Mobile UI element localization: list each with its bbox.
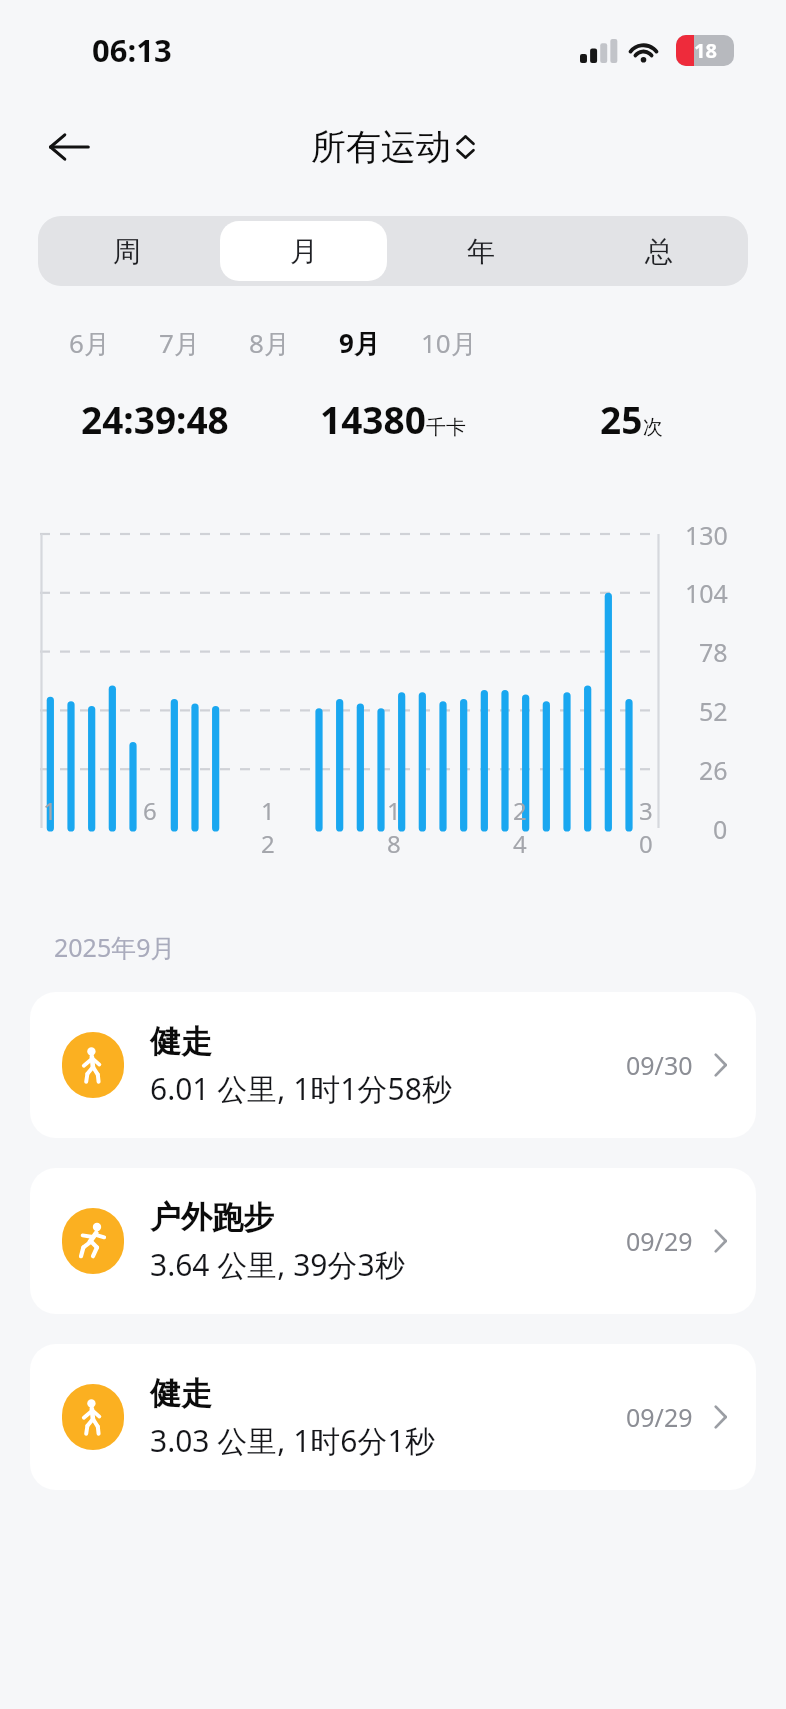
staticText: 1 <box>43 794 57 827</box>
staticText: 24:39:48 <box>81 394 229 444</box>
button[interactable]: 户外跑步 <box>30 1168 756 1314</box>
staticText: 2025年9月 <box>54 930 176 964</box>
staticText: 25 <box>600 394 643 444</box>
staticText: 0 <box>713 812 728 846</box>
staticText: 24 <box>513 794 534 860</box>
button[interactable]: 9月 <box>314 318 404 368</box>
button[interactable]: 健走 <box>30 992 756 1138</box>
button[interactable]: 总 <box>575 221 743 281</box>
staticText: 6 <box>143 794 157 827</box>
staticText: 104 <box>685 576 728 610</box>
staticText: 130 <box>685 518 728 552</box>
staticText: 78 <box>699 635 728 669</box>
button[interactable]: 7月 <box>134 318 224 368</box>
staticText: 09/29 <box>626 1224 693 1258</box>
staticText: 12 <box>261 794 282 860</box>
staticText: 30 <box>639 794 660 860</box>
staticText: 年 <box>467 234 495 269</box>
staticText: 18 <box>694 37 717 64</box>
staticText: 26 <box>699 753 728 787</box>
staticText: 8月 <box>249 325 290 361</box>
staticText: 健走 <box>150 1374 212 1413</box>
staticText: 千卡 <box>426 415 466 440</box>
staticText: 3.64 公里, 39分3秒 <box>150 1244 405 1285</box>
button[interactable]: 健走 <box>30 1344 756 1490</box>
staticText: 18 <box>387 794 408 860</box>
staticText: 月 <box>290 234 318 269</box>
staticText: 09/29 <box>626 1400 693 1434</box>
staticText: 健走 <box>150 1022 212 1061</box>
staticText: 次 <box>643 415 663 440</box>
staticText: 09/30 <box>626 1048 693 1082</box>
staticText: 户外跑步 <box>150 1198 274 1237</box>
staticText: 52 <box>699 694 728 728</box>
button[interactable]: 所有运动 <box>311 125 475 169</box>
staticText: 6月 <box>69 325 110 361</box>
staticText: 周 <box>113 234 141 269</box>
button[interactable]: 10月 <box>404 318 494 368</box>
staticText: 7月 <box>159 325 200 361</box>
button[interactable]: 年 <box>397 221 565 281</box>
button[interactable]: 月 <box>220 221 387 281</box>
button[interactable]: Back <box>34 112 104 182</box>
staticText: 3.03 公里, 1时6分1秒 <box>150 1420 435 1461</box>
staticText: 总 <box>645 234 673 269</box>
staticText: 所有运动 <box>311 125 451 169</box>
button[interactable]: 6月 <box>44 318 134 368</box>
button[interactable]: 周 <box>43 221 210 281</box>
button[interactable]: 8月 <box>224 318 314 368</box>
staticText: 14380 <box>320 394 426 444</box>
staticText: 06:13 <box>92 29 172 71</box>
staticText: 6.01 公里, 1时1分58秒 <box>150 1068 452 1109</box>
staticText: 9月 <box>339 325 380 361</box>
staticText: 10月 <box>421 325 477 361</box>
